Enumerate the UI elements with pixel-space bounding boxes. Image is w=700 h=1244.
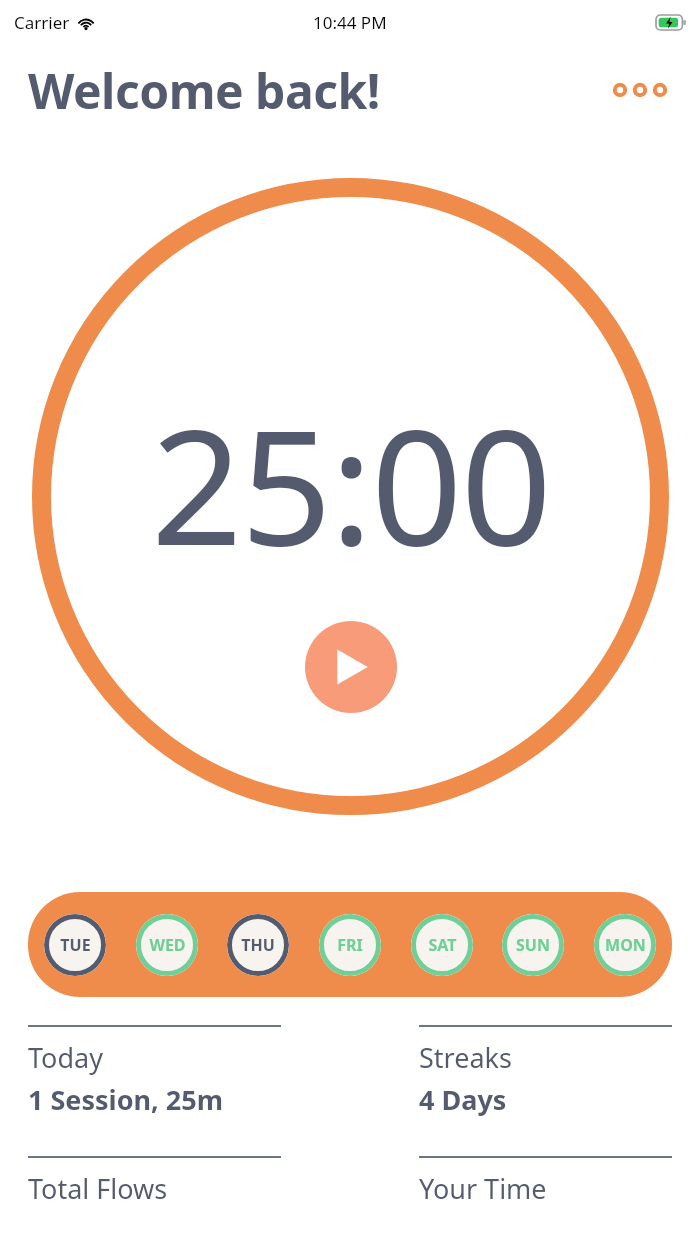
staticText: FRI [337, 934, 363, 956]
staticText: Carrier [14, 11, 70, 34]
staticText: Streaks [419, 1039, 512, 1076]
staticText: 1 Session, 25m [28, 1081, 223, 1118]
staticText: Welcome back! [28, 58, 380, 123]
button[interactable]: More options [608, 70, 672, 110]
staticText: MON [605, 934, 646, 956]
button[interactable]: SAT [411, 914, 473, 976]
button[interactable]: Total Flows [28, 1156, 281, 1207]
staticText: Your Time [419, 1170, 547, 1207]
button[interactable]: MON [594, 914, 656, 976]
button[interactable]: Pomodoro timer 25 minutes [32, 178, 669, 815]
button[interactable]: WED [136, 914, 198, 976]
staticText: SUN [516, 934, 550, 956]
staticText: Total Flows [28, 1170, 168, 1207]
staticText: 10:44 PM [313, 11, 387, 34]
button[interactable]: Today [28, 1025, 281, 1118]
staticText: THU [241, 934, 275, 956]
staticText: WED [149, 934, 186, 956]
button[interactable]: TUE [44, 914, 106, 976]
button[interactable]: Start timer [305, 621, 397, 713]
button[interactable]: SUN [502, 914, 564, 976]
staticText: Today [28, 1039, 103, 1076]
staticText: 4 Days [419, 1081, 507, 1118]
button[interactable]: Streaks [419, 1025, 672, 1118]
staticText: SAT [428, 934, 457, 956]
staticText: TUE [60, 934, 91, 956]
button[interactable]: Your Time [419, 1156, 672, 1207]
button[interactable]: THU [227, 914, 289, 976]
staticText: 25:00 [32, 374, 669, 592]
button[interactable]: FRI [319, 914, 381, 976]
